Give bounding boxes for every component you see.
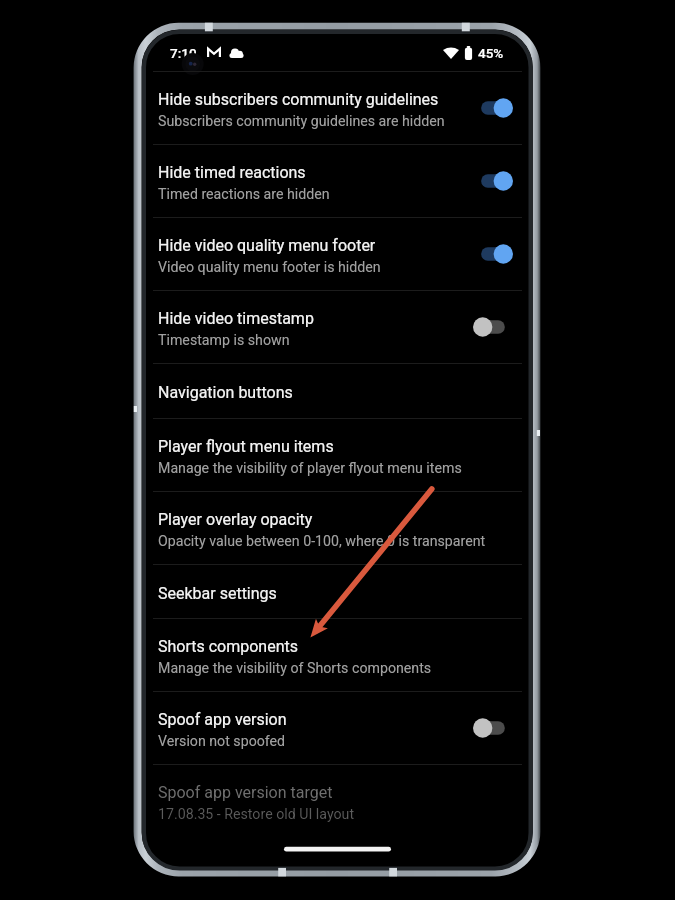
- staticText: Timed reactions are hidden: [158, 186, 330, 203]
- staticText: Player flyout menu items: [158, 437, 334, 456]
- staticText: Hide video timestamp: [158, 309, 314, 328]
- button[interactable]: Toggle on: [467, 157, 519, 205]
- button[interactable]: Spoof app version: [146, 692, 529, 764]
- staticText: Opacity value between 0-100, where 0 is …: [158, 533, 486, 550]
- staticText: Video quality menu footer is hidden: [158, 259, 381, 276]
- button[interactable]: Hide video quality menu footer: [146, 218, 529, 290]
- staticText: 17.08.35 - Restore old UI layout: [158, 806, 355, 823]
- button[interactable]: Shorts components: [146, 619, 529, 691]
- button[interactable]: Hide timed reactions: [146, 145, 529, 217]
- button[interactable]: Hide subscribers community guidelines: [146, 72, 529, 144]
- staticText: Version not spoofed: [158, 733, 286, 750]
- staticText: 45%: [478, 45, 504, 61]
- button[interactable]: Player overlay opacity: [146, 492, 529, 564]
- staticText: Hide subscribers community guidelines: [158, 90, 439, 109]
- staticText: Hide timed reactions: [158, 163, 306, 182]
- staticText: Shorts components: [158, 637, 298, 656]
- button[interactable]: Toggle off: [467, 704, 519, 752]
- staticText: 7:10: [170, 45, 197, 61]
- button[interactable]: Player flyout menu items: [146, 419, 529, 491]
- staticText: Player overlay opacity: [158, 510, 313, 529]
- button[interactable]: Toggle on: [467, 84, 519, 132]
- staticText: Hide video quality menu footer: [158, 236, 376, 255]
- staticText: Seekbar settings: [158, 584, 277, 603]
- button[interactable]: Hide video timestamp: [146, 291, 529, 363]
- button[interactable]: Spoof app version target: [146, 765, 529, 837]
- staticText: Manage the visibility of Shorts componen…: [158, 660, 432, 677]
- button[interactable]: Navigation buttons: [146, 364, 529, 418]
- staticText: Spoof app version: [158, 710, 287, 729]
- button[interactable]: Toggle off: [467, 303, 519, 351]
- staticText: Timestamp is shown: [158, 332, 290, 349]
- staticText: Manage the visibility of player flyout m…: [158, 460, 462, 477]
- button[interactable]: Seekbar settings: [146, 565, 529, 618]
- staticText: Spoof app version target: [158, 783, 333, 802]
- staticText: Navigation buttons: [158, 383, 293, 402]
- button[interactable]: Toggle on: [467, 230, 519, 278]
- staticText: Subscribers community guidelines are hid…: [158, 113, 445, 130]
